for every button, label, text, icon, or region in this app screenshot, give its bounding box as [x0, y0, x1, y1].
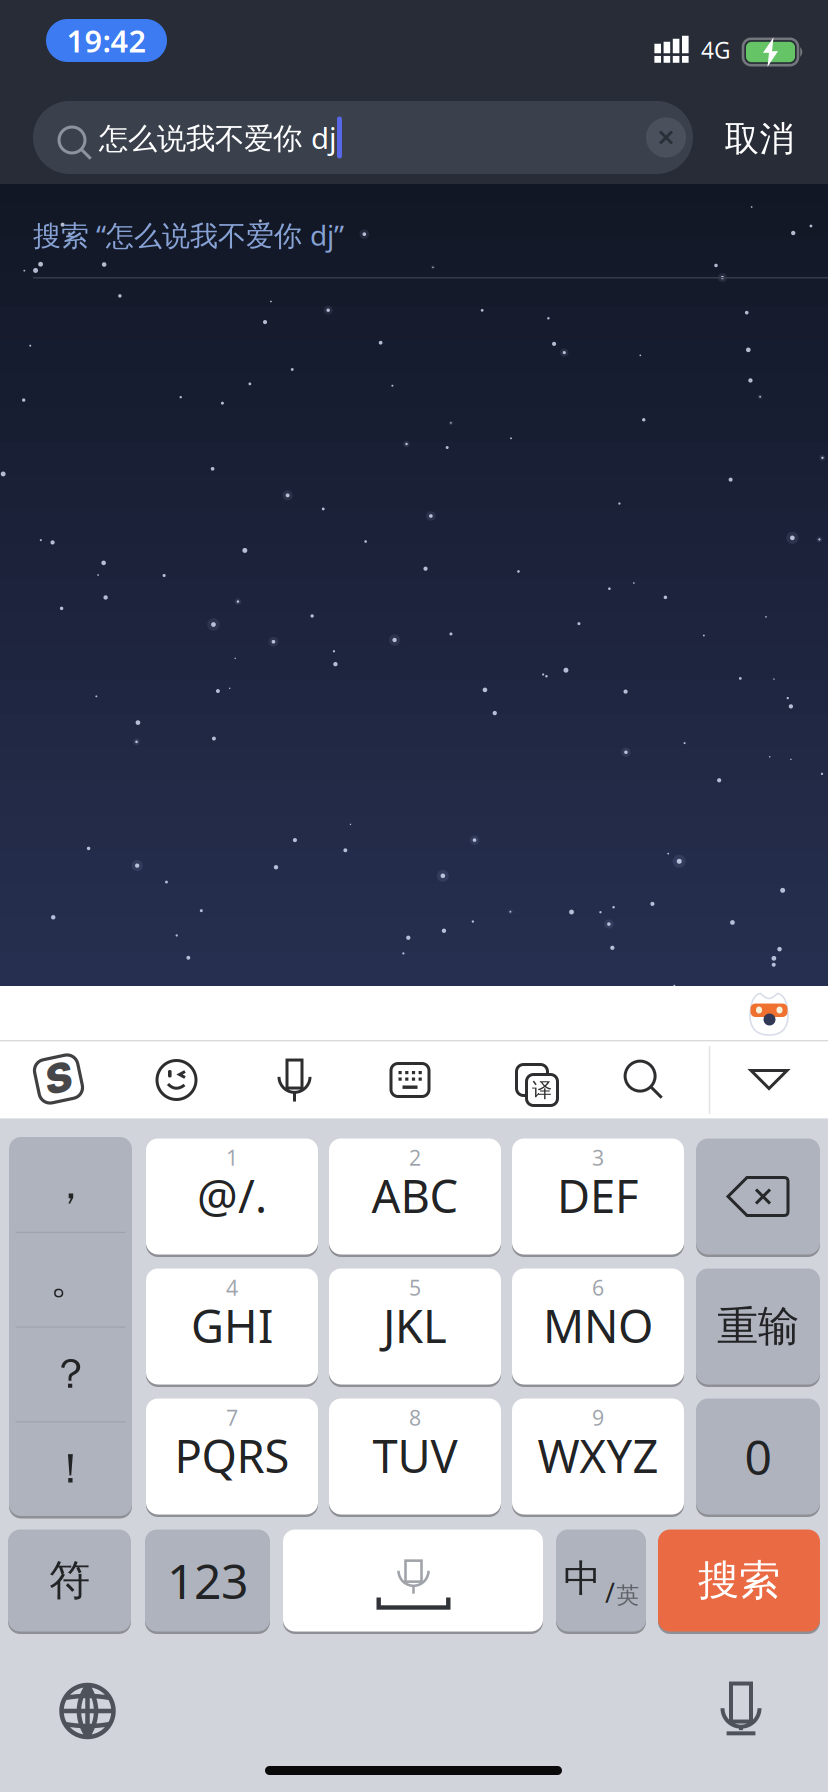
button[interactable]: 取消 — [724, 118, 794, 160]
staticText: 3 — [592, 1143, 604, 1172]
staticText: PQRS — [174, 1425, 289, 1486]
staticText: @/. — [197, 1165, 267, 1226]
staticText: 。 — [50, 1254, 91, 1304]
staticText: S — [45, 1054, 72, 1102]
button[interactable]: 4 — [146, 1267, 318, 1386]
button[interactable]: 收起键盘 — [749, 1068, 789, 1091]
button[interactable]: 搜索 — [622, 1058, 668, 1104]
button[interactable]: 搜狗输入法菜单 — [31, 1052, 85, 1106]
staticText: 19:42 — [66, 20, 146, 61]
button[interactable]: 123 — [145, 1528, 270, 1633]
staticText: 搜索 “怎么说我不爱你 dj” — [33, 216, 344, 254]
staticText: 译 — [532, 1078, 552, 1102]
staticText: GHI — [191, 1295, 273, 1356]
button[interactable]: 清除文本 — [646, 117, 686, 157]
button[interactable]: 5 — [329, 1267, 501, 1386]
button[interactable]: 重输 — [696, 1267, 820, 1386]
button[interactable]: 2 — [329, 1137, 501, 1256]
button[interactable]: 。 — [9, 1232, 132, 1327]
staticText: DEF — [557, 1165, 639, 1226]
staticText: ！ — [50, 1443, 91, 1494]
button[interactable]: 8 — [329, 1397, 501, 1516]
button[interactable]: 汪仔助手 — [750, 991, 788, 1035]
button[interactable]: 搜索 — [658, 1528, 820, 1633]
staticText: MNO — [543, 1295, 653, 1356]
staticText: 123 — [167, 1549, 248, 1612]
button[interactable]: 听写 — [721, 1679, 761, 1736]
button[interactable]: 切换输入法 — [57, 1680, 118, 1741]
button[interactable]: 9 — [512, 1397, 684, 1516]
staticText: 6 — [592, 1273, 604, 1302]
button[interactable]: 6 — [512, 1267, 684, 1386]
staticText: TUV — [372, 1425, 457, 1486]
staticText: 4 — [226, 1273, 238, 1302]
button[interactable]: 表情 — [154, 1058, 198, 1102]
staticText: 0 — [744, 1425, 771, 1488]
staticText: 1 — [226, 1143, 238, 1172]
staticText: ， — [50, 1159, 91, 1210]
staticText: 9 — [592, 1403, 604, 1432]
button[interactable]: 3 — [512, 1137, 684, 1256]
button[interactable]: 键盘布局 — [391, 1063, 429, 1096]
staticText: WXYZ — [537, 1425, 658, 1486]
button[interactable]: ， — [9, 1137, 132, 1232]
staticText: ？ — [50, 1348, 91, 1399]
staticText: 5 — [409, 1273, 421, 1302]
button[interactable]: 语音输入 — [277, 1057, 311, 1103]
button[interactable]: 删除 — [696, 1137, 820, 1256]
button[interactable]: ？ — [9, 1326, 132, 1421]
staticText: 8 — [409, 1403, 421, 1432]
button[interactable]: 1 — [146, 1137, 318, 1256]
staticText: 重输 — [717, 1301, 799, 1352]
button[interactable]: 搜索 “怎么说我不爱你 dj” — [33, 189, 828, 281]
staticText: 怎么说我不爱你 dj — [99, 118, 337, 157]
staticText: 7 — [226, 1403, 238, 1432]
button[interactable]: 中 — [556, 1528, 646, 1633]
staticText: 2 — [409, 1143, 421, 1172]
button[interactable]: 7 — [146, 1397, 318, 1516]
staticText: 取消 — [724, 118, 794, 160]
staticText: ABC — [371, 1165, 458, 1226]
button[interactable]: 0 — [696, 1397, 820, 1516]
staticText: 搜索 — [698, 1555, 780, 1606]
staticText: 中 — [563, 1556, 600, 1601]
button[interactable]: 搜索框 — [33, 101, 693, 174]
staticText: JKL — [383, 1295, 447, 1356]
button[interactable]: 符 — [8, 1528, 131, 1633]
staticText: / — [605, 1575, 615, 1610]
staticText: 4G — [701, 35, 731, 65]
staticText: 英 — [616, 1582, 639, 1609]
button[interactable]: 翻译 — [511, 1059, 553, 1101]
staticText: 符 — [49, 1555, 90, 1606]
button[interactable]: ！ — [9, 1421, 132, 1516]
button[interactable]: 空格 — [283, 1528, 543, 1633]
